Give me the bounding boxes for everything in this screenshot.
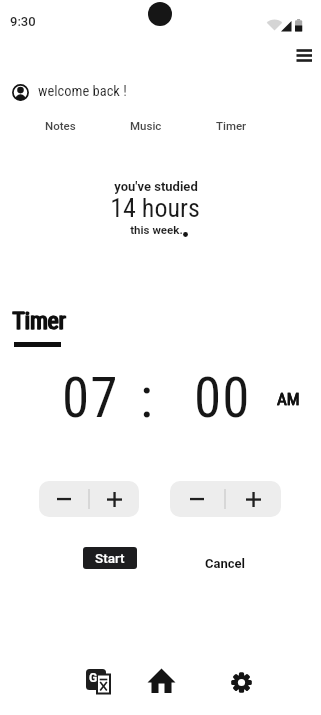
staticText: welcome back ! (38, 83, 127, 100)
staticText: Timer (12, 307, 66, 335)
staticText: 9:30 (10, 14, 36, 29)
button[interactable] (145, 664, 178, 697)
staticText: 07 (62, 366, 119, 430)
button[interactable] (226, 481, 281, 517)
staticText: Cancel (205, 556, 246, 571)
staticText: Notes (45, 119, 76, 132)
button[interactable]: Cancel (198, 553, 252, 574)
button[interactable] (230, 671, 254, 695)
staticText: : (140, 366, 153, 430)
button[interactable]: G (83, 665, 117, 699)
staticText: G (89, 671, 98, 685)
staticText: AM (277, 389, 300, 409)
staticText: Timer (13, 307, 67, 335)
button[interactable] (39, 481, 88, 517)
staticText: Timer (216, 119, 247, 132)
button[interactable]: Timer (206, 112, 256, 138)
staticText: 00 (194, 366, 251, 430)
staticText: Timer (12, 307, 66, 335)
button[interactable] (288, 40, 320, 68)
button[interactable] (90, 481, 139, 517)
staticText: you've studied (114, 179, 198, 194)
button[interactable] (6, 78, 146, 106)
staticText: 14 hours (110, 193, 200, 223)
staticText: AM (277, 389, 300, 409)
button[interactable] (170, 481, 224, 517)
staticText: this week. (130, 223, 183, 236)
staticText: Start (95, 550, 125, 566)
button[interactable]: Notes (35, 112, 85, 138)
staticText: AM (277, 389, 300, 409)
staticText: Music (130, 119, 162, 132)
button[interactable]: Music (121, 112, 171, 138)
button[interactable]: Start (83, 547, 137, 569)
